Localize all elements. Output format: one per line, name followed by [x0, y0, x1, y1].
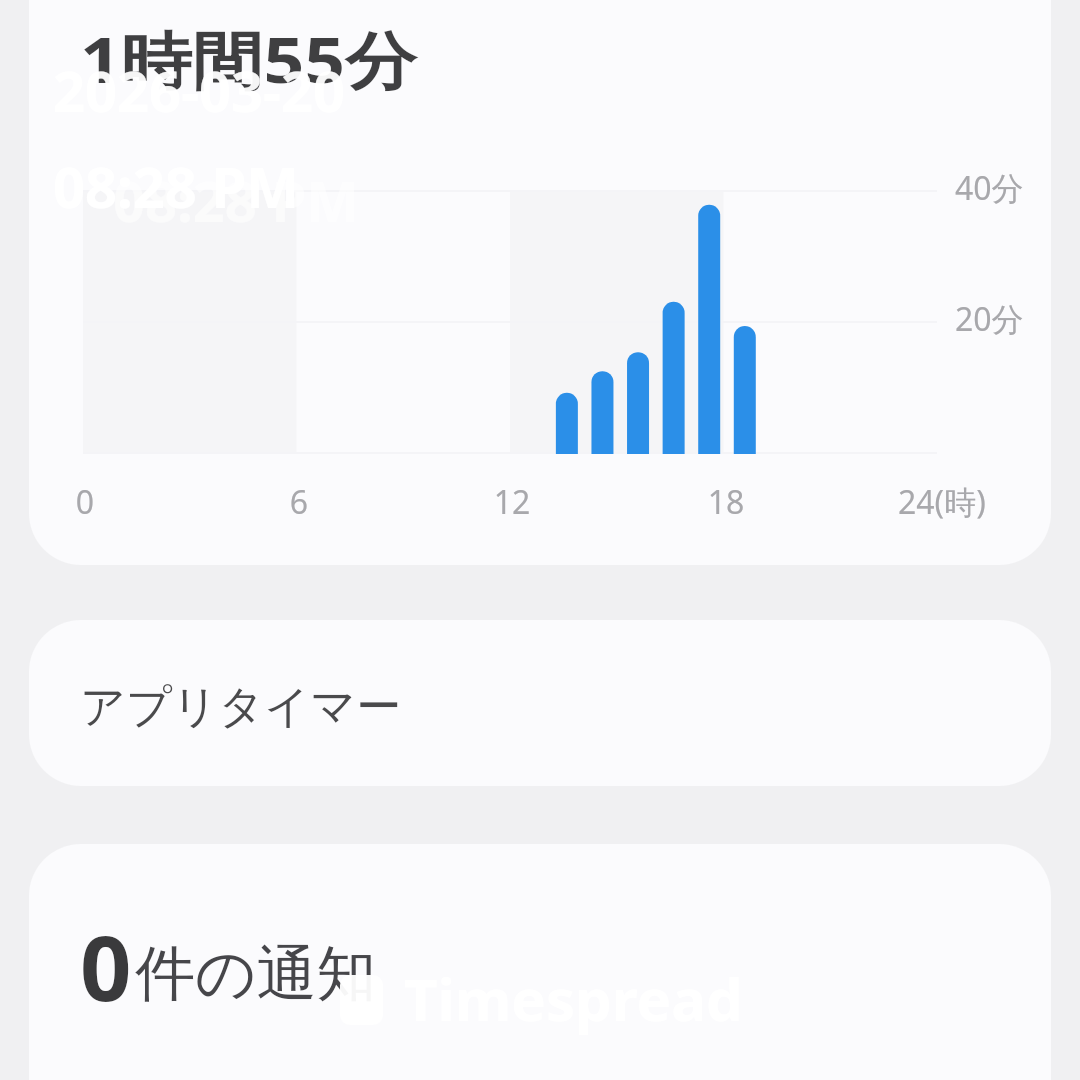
button[interactable]: アプリタイマー	[29, 620, 1051, 786]
other: Timespread logo	[340, 975, 383, 1025]
staticText: 2026-03-20	[53, 52, 346, 128]
staticText: 20分	[955, 297, 1024, 341]
staticText: 08:28 PM	[53, 148, 300, 224]
staticText: 08:28 PM	[113, 162, 360, 238]
staticText: 件の通知	[135, 936, 377, 1012]
button[interactable]: 1時間55分	[29, 0, 1051, 565]
staticText: 0	[35, 480, 135, 524]
button[interactable]: 0	[29, 844, 1051, 1080]
staticText: 18	[676, 480, 776, 524]
staticText: 40分	[955, 166, 1024, 210]
staticText: 6	[249, 480, 349, 524]
staticText: 24(時)	[898, 480, 986, 524]
staticText: アプリタイマー	[80, 679, 402, 736]
staticText: 12	[462, 480, 562, 524]
staticText: 0	[80, 905, 132, 1028]
staticText: 1時間55分	[80, 17, 417, 102]
